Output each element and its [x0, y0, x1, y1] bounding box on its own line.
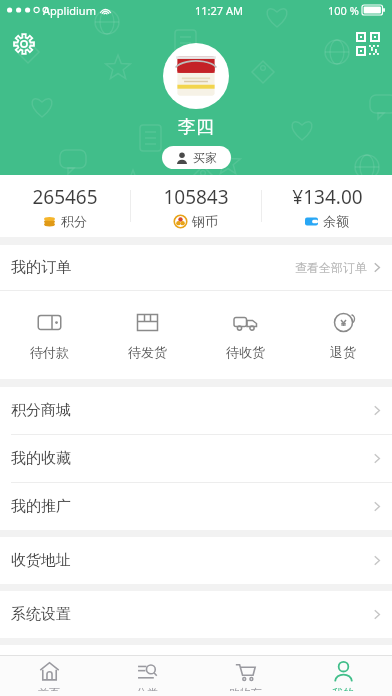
button[interactable]: 买家	[162, 146, 231, 169]
button[interactable]	[165, 45, 227, 107]
staticText: 我的订单	[11, 258, 71, 277]
staticText: 100 %	[328, 3, 359, 18]
staticText: 积分	[61, 213, 87, 229]
staticText: 首页	[38, 686, 60, 691]
staticText: 我的收藏	[11, 449, 71, 468]
button[interactable]: Settings	[8, 28, 40, 60]
staticText: 265465	[32, 184, 98, 210]
staticText: 系统设置	[11, 605, 71, 624]
staticText: 查看全部订单	[295, 260, 367, 275]
button[interactable]: ¥134.00	[262, 178, 392, 235]
staticText: 买家	[193, 150, 217, 165]
button[interactable]: Scan QR code	[352, 28, 384, 60]
button[interactable]: 退货	[294, 302, 392, 368]
staticText: 钢币	[192, 213, 218, 229]
button[interactable]: 待发货	[98, 302, 196, 368]
staticText: 我的	[332, 686, 354, 691]
button[interactable]: 265465	[0, 178, 130, 235]
button[interactable]: 我的推广	[0, 483, 392, 530]
staticText: 105843	[163, 184, 229, 210]
button[interactable]: 购物车	[196, 656, 294, 696]
button[interactable]: 我的收藏	[0, 435, 392, 482]
button[interactable]: 收货地址	[0, 537, 392, 584]
staticText: 购物车	[229, 686, 262, 691]
staticText: 积分商城	[11, 401, 71, 420]
button[interactable]: 分类	[98, 656, 196, 696]
button[interactable]: 待收货	[196, 302, 294, 368]
staticText: 余额	[323, 213, 349, 229]
staticText: 李四	[178, 116, 214, 139]
button[interactable]: 我的订单	[0, 245, 392, 290]
button[interactable]: 105843	[131, 178, 261, 235]
button[interactable]: 系统设置	[0, 591, 392, 638]
staticText: 分类	[136, 686, 158, 691]
staticText: 收货地址	[11, 551, 71, 570]
staticText: Applidium	[43, 3, 96, 18]
staticText: 待发货	[128, 344, 167, 360]
staticText: 11:27 AM	[195, 3, 243, 18]
button[interactable]: 待付款	[0, 302, 98, 368]
button[interactable]: 首页	[0, 656, 98, 696]
staticText: 待收货	[226, 344, 265, 360]
staticText: 退货	[330, 344, 356, 360]
staticText: 我的推广	[11, 497, 71, 516]
staticText: ¥134.00	[292, 184, 363, 210]
button[interactable]: 我的	[294, 656, 392, 696]
staticText: 待付款	[30, 344, 69, 360]
button[interactable]: 积分商城	[0, 387, 392, 434]
